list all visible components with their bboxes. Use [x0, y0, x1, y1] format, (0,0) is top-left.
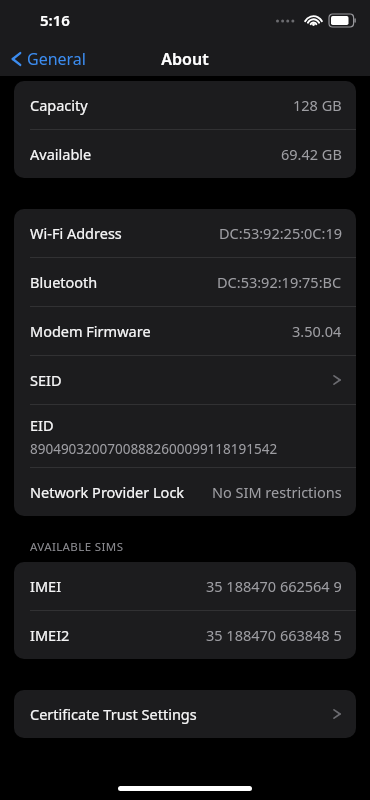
button[interactable]: Available — [14, 130, 356, 178]
staticText: Certificate Trust Settings — [30, 704, 197, 724]
button[interactable]: Wi-Fi Address — [14, 209, 356, 257]
staticText: Modem Firmware — [30, 321, 151, 341]
staticText: 128 GB — [293, 95, 342, 115]
staticText: DC:53:92:25:0C:19 — [219, 223, 342, 243]
button[interactable]: Capacity — [14, 81, 356, 129]
button[interactable]: General — [6, 43, 91, 75]
button[interactable]: IMEI2 — [14, 611, 356, 659]
staticText: DC:53:92:19:75:BC — [217, 272, 342, 292]
staticText: 3.50.04 — [292, 321, 342, 341]
button[interactable]: Bluetooth — [14, 258, 356, 306]
button[interactable]: Network Provider Lock — [14, 468, 356, 516]
staticText: General — [27, 48, 86, 70]
staticText: EID — [30, 415, 54, 435]
staticText: IMEI2 — [30, 625, 70, 645]
staticText: 89049032007008882600099118191542 — [30, 440, 278, 458]
staticText: About — [161, 48, 209, 70]
staticText: AVAILABLE SIMS — [30, 539, 124, 555]
button[interactable]: SEID — [14, 356, 356, 404]
staticText: No SIM restrictions — [212, 482, 342, 502]
button[interactable]: Certificate Trust Settings — [14, 690, 356, 738]
staticText: 35 188470 663848 5 — [206, 625, 342, 645]
staticText: 69.42 GB — [281, 144, 342, 164]
staticText: 35 188470 662564 9 — [206, 576, 342, 596]
staticText: Wi-Fi Address — [30, 223, 122, 243]
staticText: IMEI — [30, 576, 62, 596]
staticText: Bluetooth — [30, 272, 98, 292]
staticText: Available — [30, 144, 92, 164]
staticText: SEID — [30, 370, 62, 390]
button[interactable]: EID — [14, 405, 356, 467]
button[interactable]: Modem Firmware — [14, 307, 356, 355]
staticText: 5:16 — [40, 10, 70, 30]
staticText: Capacity — [30, 95, 88, 115]
other: Home indicator — [118, 786, 252, 791]
staticText: Network Provider Lock — [30, 482, 185, 502]
button[interactable]: IMEI — [14, 562, 356, 610]
